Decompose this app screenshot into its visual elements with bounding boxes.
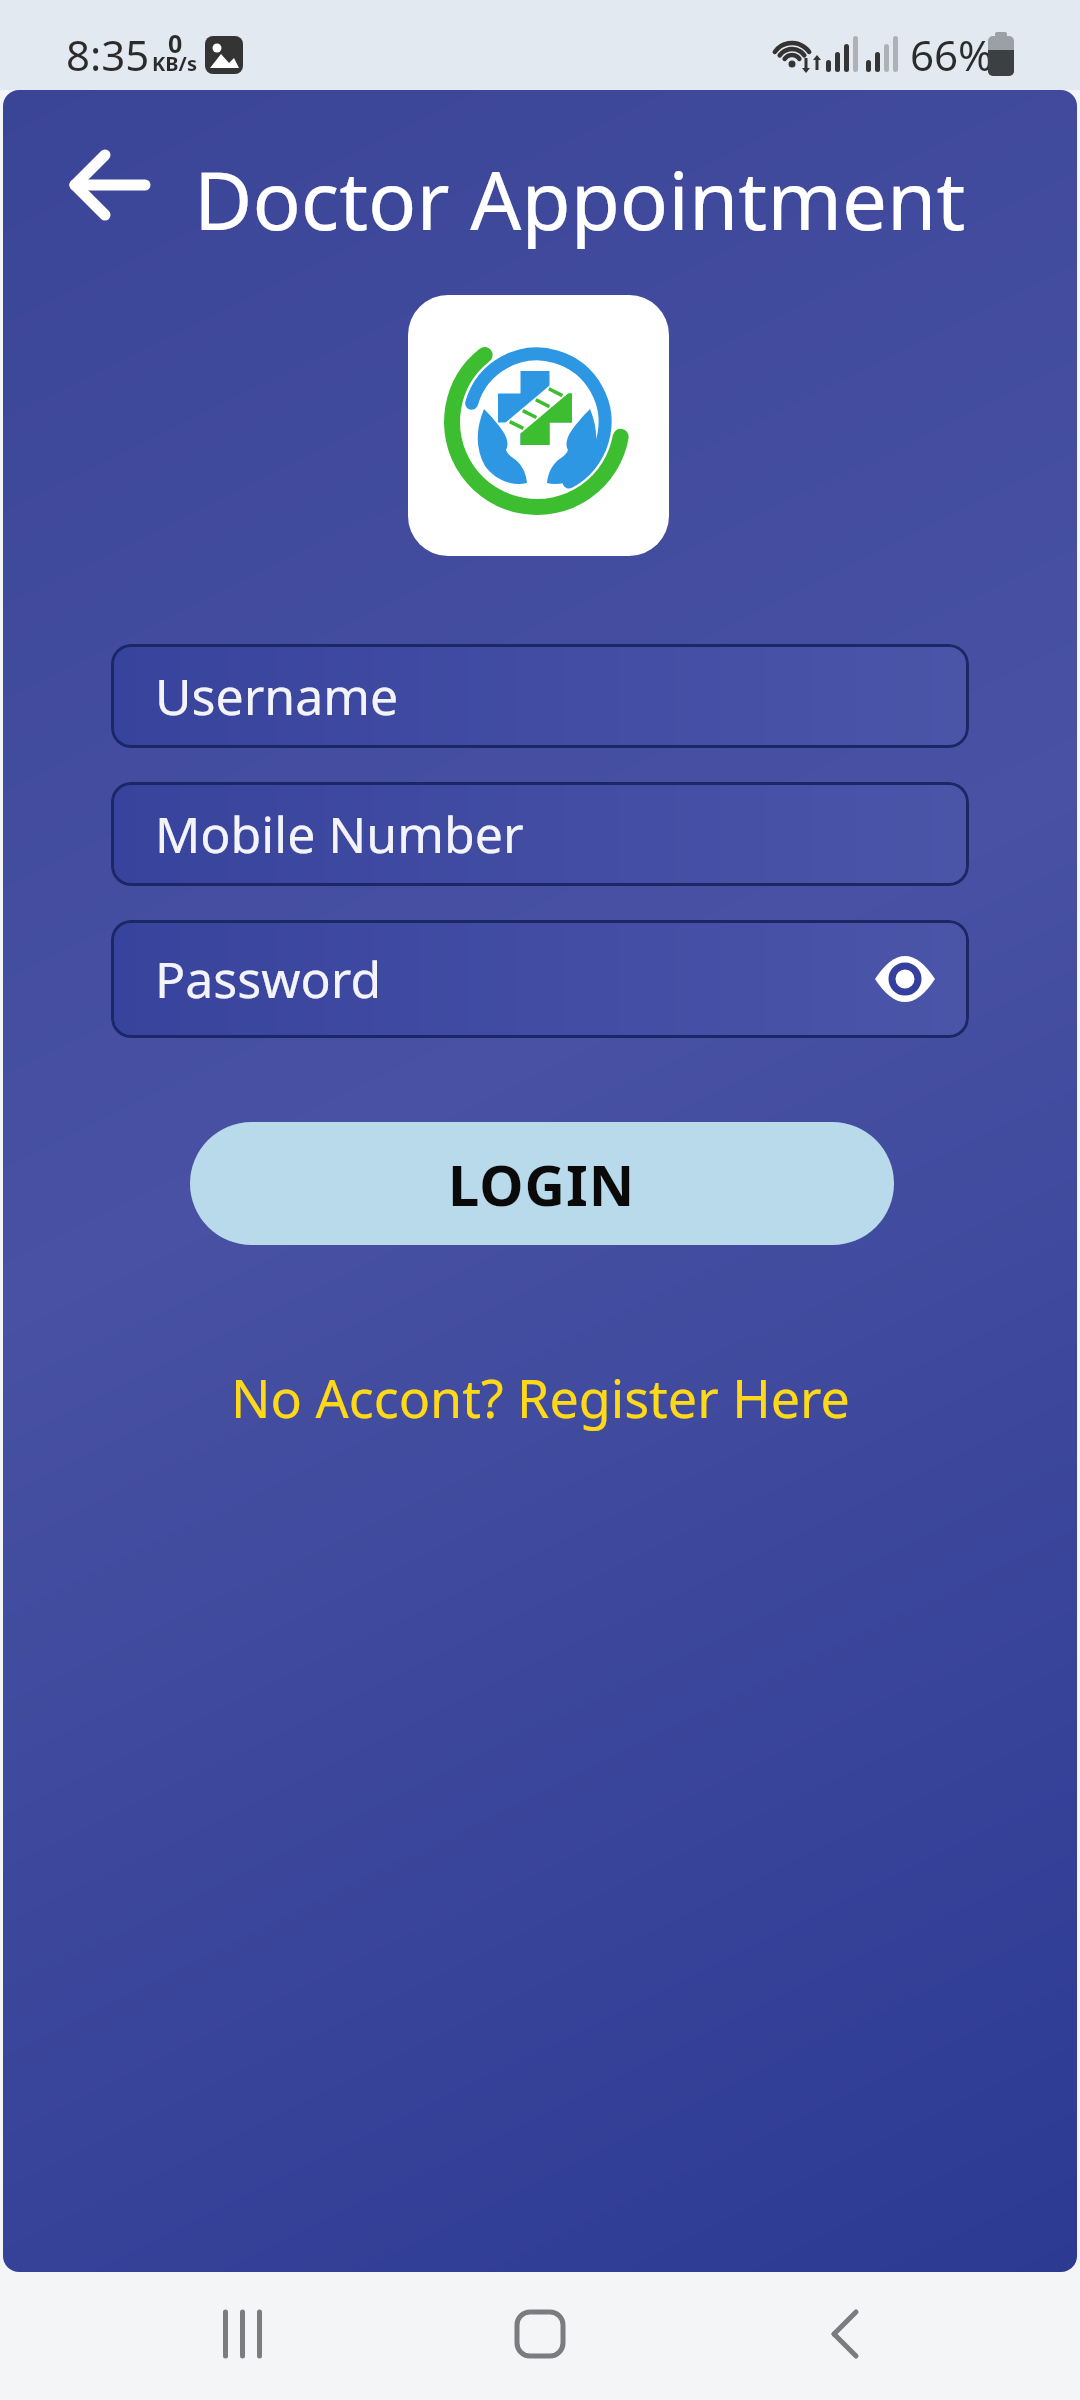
staticText: 8:35 bbox=[66, 26, 150, 83]
button[interactable]: No Accont? Register Here bbox=[231, 1362, 850, 1433]
staticText: 0 bbox=[168, 26, 183, 60]
staticText: 66% bbox=[910, 26, 993, 83]
staticText: Password bbox=[155, 945, 382, 1013]
button[interactable]: Username bbox=[111, 644, 969, 748]
staticText: Mobile Number bbox=[155, 800, 524, 868]
staticText: LOGIN bbox=[448, 1146, 636, 1222]
button[interactable] bbox=[797, 2286, 893, 2382]
staticText: KB/s bbox=[152, 50, 197, 77]
button[interactable]: Mobile Number bbox=[111, 782, 969, 886]
staticText: Doctor Appointment bbox=[194, 144, 966, 253]
button[interactable] bbox=[492, 2286, 588, 2382]
button[interactable]: Password bbox=[111, 920, 969, 1038]
button[interactable]: LOGIN bbox=[190, 1122, 894, 1245]
staticText: Username bbox=[155, 662, 399, 730]
button[interactable] bbox=[50, 125, 170, 245]
button[interactable] bbox=[195, 2286, 291, 2382]
